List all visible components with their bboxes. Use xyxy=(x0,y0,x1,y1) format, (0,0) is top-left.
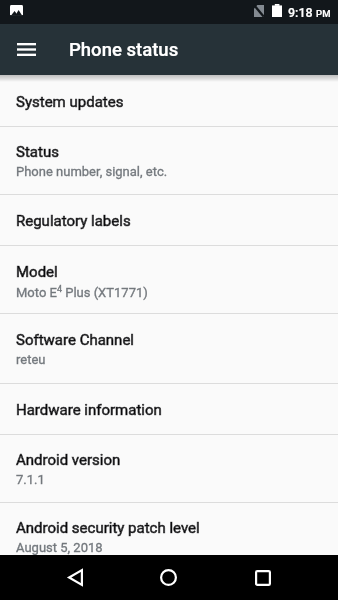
staticText: Android version xyxy=(16,451,121,469)
button[interactable]: Home xyxy=(146,555,191,600)
staticText: Phone number, signal, etc. xyxy=(16,164,168,179)
staticText: reteu xyxy=(16,352,46,367)
staticText: Model xyxy=(16,263,58,281)
button[interactable]: Software Channel xyxy=(0,314,338,384)
staticText: Software Channel xyxy=(16,331,134,349)
button[interactable]: Open navigation menu xyxy=(3,27,49,73)
staticText: Phone status xyxy=(69,39,179,61)
staticText: Software Channel xyxy=(16,331,134,349)
staticText: System updates xyxy=(16,93,124,111)
staticText: Android security patch level xyxy=(16,519,200,537)
button[interactable]: Android security patch level xyxy=(0,503,338,555)
button[interactable]: Status xyxy=(0,127,338,195)
staticText: Status xyxy=(16,143,59,161)
staticText: Hardware information xyxy=(16,401,162,419)
staticText: reteu xyxy=(16,352,46,367)
staticText: 7.1.1 xyxy=(16,472,45,487)
staticText: Regulatory labels xyxy=(16,212,131,230)
staticText: Status xyxy=(16,143,59,161)
button[interactable]: Regulatory labels xyxy=(0,195,338,246)
staticText: 7.1.1 xyxy=(16,472,45,487)
button[interactable]: Recent apps xyxy=(240,555,285,600)
staticText: Hardware information xyxy=(16,401,162,419)
button[interactable]: Back xyxy=(53,555,98,600)
staticText: Moto E4 Plus (XT1771) xyxy=(16,284,148,300)
staticText: Android security patch level xyxy=(16,519,200,537)
button[interactable]: System updates xyxy=(0,76,338,127)
staticText: Phone number, signal, etc. xyxy=(16,164,168,179)
staticText: Android version xyxy=(16,451,121,469)
button[interactable]: Hardware information xyxy=(0,384,338,435)
staticText: August 5, 2018 xyxy=(16,540,103,555)
staticText: Regulatory labels xyxy=(16,212,131,230)
staticText: Moto E4 Plus (XT1771) xyxy=(16,284,148,300)
staticText: August 5, 2018 xyxy=(16,540,103,555)
staticText: 9:18 PM xyxy=(288,4,331,20)
staticText: Model xyxy=(16,263,58,281)
staticText: System updates xyxy=(16,93,124,111)
button[interactable]: Model xyxy=(0,246,338,314)
button[interactable]: Android version xyxy=(0,435,338,503)
